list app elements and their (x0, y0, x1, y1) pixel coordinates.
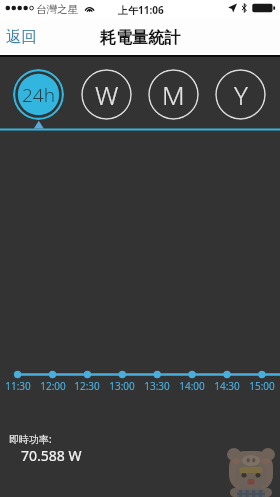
button[interactable]: 24h (13, 69, 64, 120)
staticText: 70.588 W (21, 446, 82, 465)
staticText: 24h (22, 82, 56, 108)
staticText: 14:00 (175, 379, 209, 393)
staticText: 上午11:06 (118, 3, 164, 17)
staticText: 12:00 (36, 379, 70, 393)
staticText: 耗電量統計 (100, 28, 180, 48)
staticText: 13:30 (140, 379, 174, 393)
button[interactable]: 返回 (0, 22, 47, 52)
staticText: 返回 (6, 27, 37, 47)
staticText: 台灣之星 (36, 3, 78, 16)
staticText: 12:30 (70, 379, 104, 393)
button[interactable]: M (148, 69, 199, 120)
staticText: 11:30 (1, 379, 35, 393)
staticText: W (95, 77, 119, 112)
staticText: M (162, 77, 185, 112)
staticText: 13:00 (105, 379, 139, 393)
button[interactable]: W (81, 69, 132, 120)
button[interactable]: Y (215, 69, 266, 120)
staticText: 14:30 (210, 379, 244, 393)
staticText: Y (234, 77, 248, 112)
staticText: 15:00 (245, 379, 279, 393)
staticText: 即時功率: (9, 432, 52, 446)
